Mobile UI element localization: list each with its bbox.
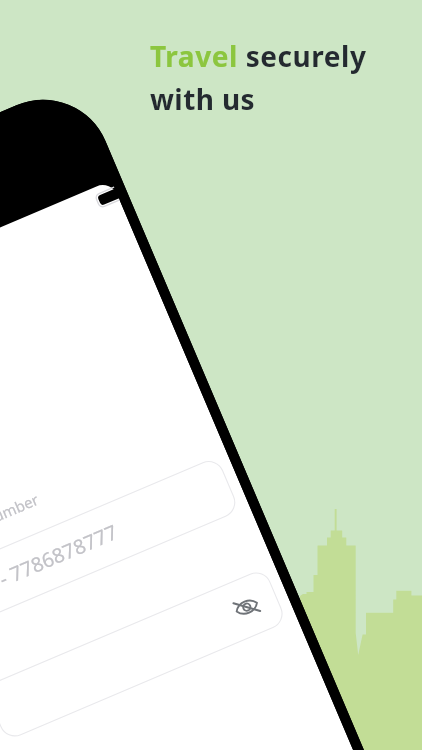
button[interactable]: Phone number field bbox=[0, 548, 240, 606]
button[interactable]: Show password bbox=[234, 594, 262, 622]
